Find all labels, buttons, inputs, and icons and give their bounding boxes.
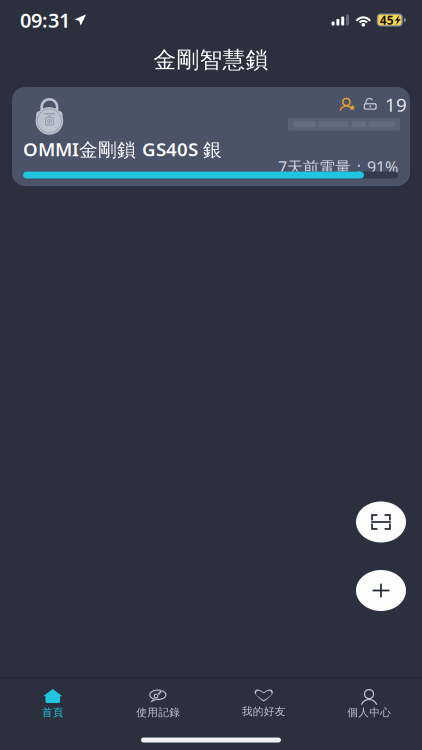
staticText: 使用記錄 <box>136 706 180 719</box>
button[interactable]: Add device <box>356 570 406 611</box>
button[interactable]: 使用記錄 <box>105 679 211 729</box>
button[interactable]: 首頁 <box>0 679 105 729</box>
button[interactable]: 19 <box>12 87 410 186</box>
staticText: 金剛智慧鎖 <box>153 46 268 74</box>
staticText: OMMI金剛鎖 GS40S 銀 <box>23 137 222 161</box>
staticText: 7天前電量：91% <box>278 156 398 178</box>
staticText: 09:31 <box>20 7 70 33</box>
button[interactable]: Scan QR code <box>356 501 406 542</box>
staticText: 首頁 <box>42 706 64 719</box>
button[interactable]: 我的好友 <box>211 679 316 729</box>
staticText: 個人中心 <box>347 706 391 719</box>
button[interactable]: 個人中心 <box>316 679 422 729</box>
staticText: 我的好友 <box>242 705 286 718</box>
staticText: 19 <box>385 92 407 117</box>
staticText: 45 <box>380 12 394 28</box>
